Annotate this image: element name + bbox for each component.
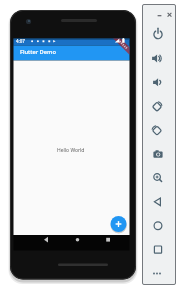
staticText: Flutter Demo	[20, 48, 56, 56]
button[interactable]	[110, 216, 126, 232]
button[interactable]	[150, 50, 166, 66]
button[interactable]	[150, 74, 166, 90]
button[interactable]	[150, 265, 166, 281]
button[interactable]	[38, 233, 54, 246]
button[interactable]	[150, 218, 166, 234]
button[interactable]	[150, 146, 166, 162]
button[interactable]	[150, 242, 166, 258]
button[interactable]	[100, 233, 116, 246]
button[interactable]	[150, 122, 166, 138]
button[interactable]	[155, 11, 164, 20]
button[interactable]	[165, 10, 174, 19]
button[interactable]	[69, 233, 85, 246]
button[interactable]	[150, 27, 166, 43]
button[interactable]	[150, 194, 166, 210]
staticText: 4:07	[16, 38, 25, 44]
button[interactable]	[150, 98, 166, 114]
staticText: Hello World	[57, 147, 85, 154]
button[interactable]	[150, 170, 166, 186]
